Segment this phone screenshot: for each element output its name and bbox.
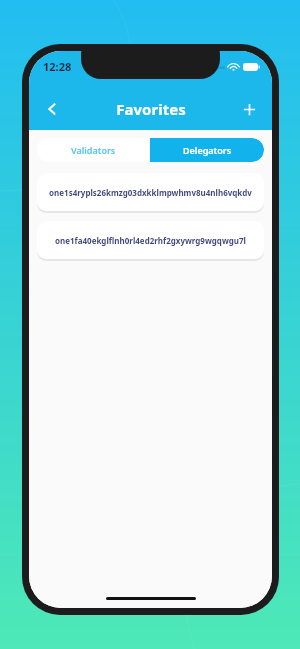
button[interactable]: one1s4rypls26kmzg03dxkklmpwhmv8u4nlh6vqk… <box>37 173 264 211</box>
staticText: one1fa40ekglflnh0rl4ed2rhf2gxywrg9wgqwgu… <box>55 235 246 246</box>
staticText: Validators <box>71 144 116 156</box>
button[interactable]: one1fa40ekglflnh0rl4ed2rhf2gxywrg9wgqwgu… <box>37 221 264 259</box>
button[interactable]: Delegators <box>150 138 264 162</box>
button[interactable]: Add <box>231 91 267 127</box>
staticText: Favorites <box>116 99 186 119</box>
button[interactable]: Validators <box>37 138 150 162</box>
button[interactable]: Back <box>34 91 70 127</box>
staticText: 12:28 <box>43 59 72 74</box>
staticText: Delegators <box>183 144 232 156</box>
staticText: one1s4rypls26kmzg03dxkklmpwhmv8u4nlh6vqk… <box>49 187 252 198</box>
